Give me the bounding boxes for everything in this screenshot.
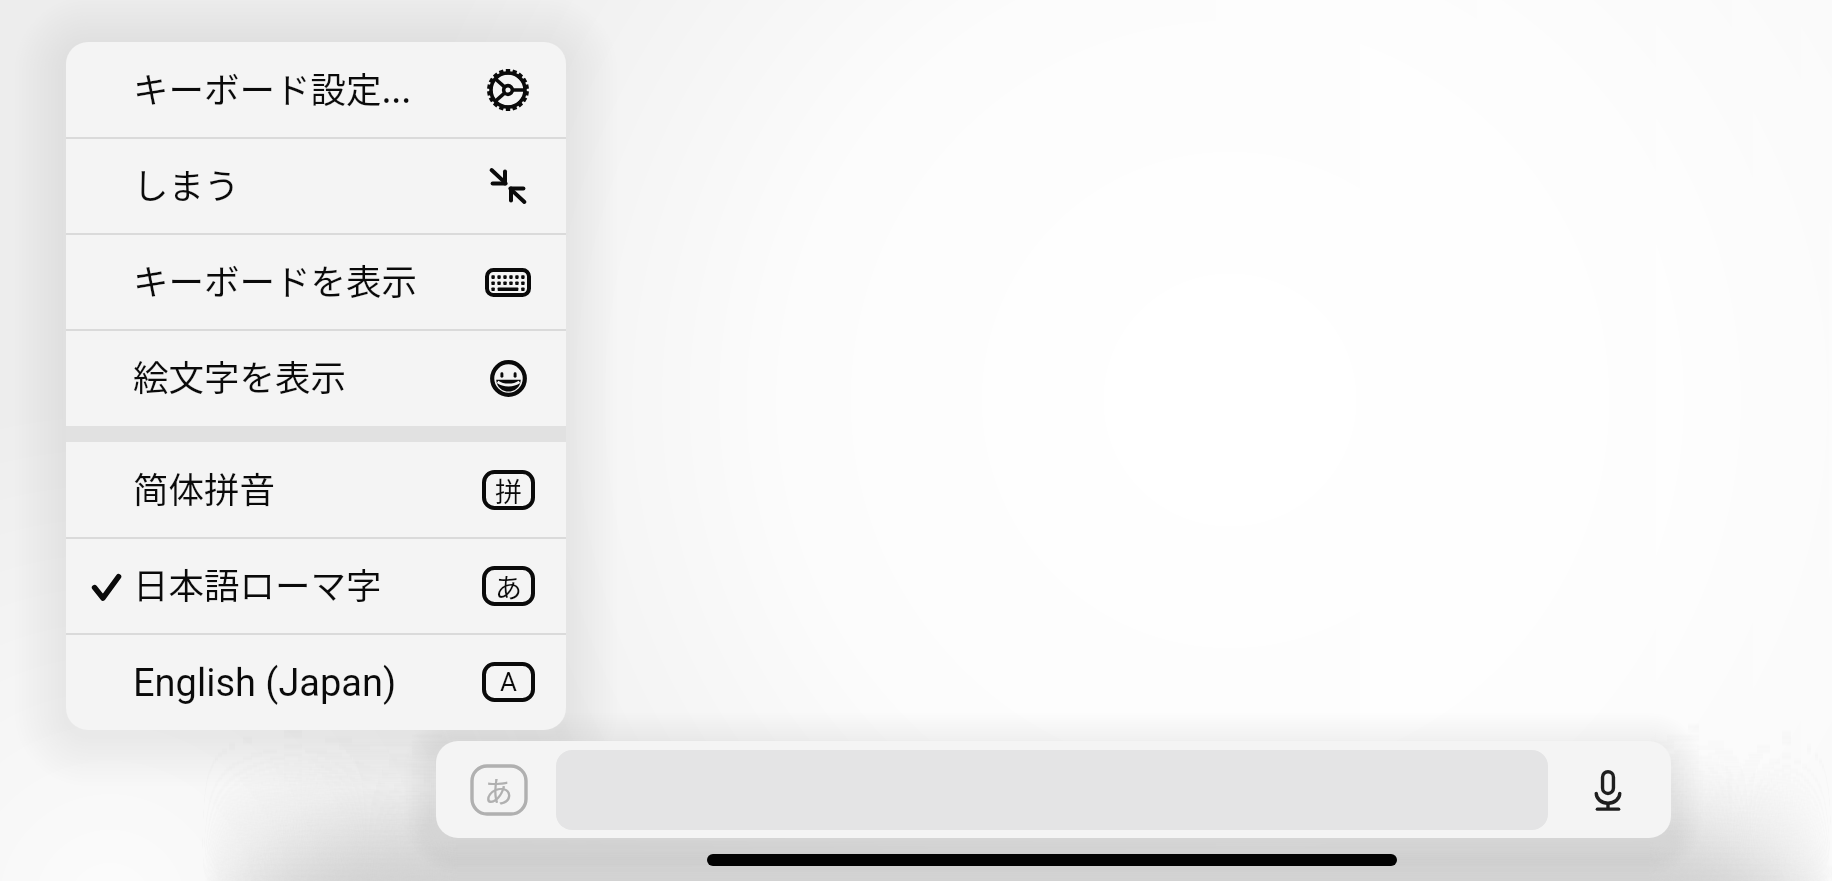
staticText: A — [500, 667, 517, 697]
staticText: English (Japan) — [133, 661, 397, 706]
staticText: あ — [495, 567, 522, 606]
staticText: キーボード設定... — [133, 62, 412, 113]
button[interactable]: Voice input — [1580, 762, 1636, 818]
button[interactable]: 简体拼音 — [66, 442, 566, 538]
staticText: 日本語ローマ字 — [133, 558, 382, 609]
staticText: 絵文字を表示 — [133, 350, 347, 401]
staticText: 拼 — [495, 471, 522, 510]
button[interactable]: English (Japan) — [66, 634, 566, 730]
staticText: あ — [484, 769, 514, 811]
staticText: しまう — [133, 158, 240, 209]
button[interactable]: 日本語ローマ字 — [66, 538, 566, 634]
button[interactable]: 絵文字を表示 — [66, 330, 566, 426]
button[interactable]: キーボード設定... — [66, 42, 566, 138]
staticText: キーボードを表示 — [133, 254, 418, 305]
staticText: 简体拼音 — [133, 462, 276, 513]
button[interactable]: しまう — [66, 138, 566, 234]
button[interactable]: キーボードを表示 — [66, 234, 566, 330]
button[interactable]: Input method — [470, 764, 528, 816]
